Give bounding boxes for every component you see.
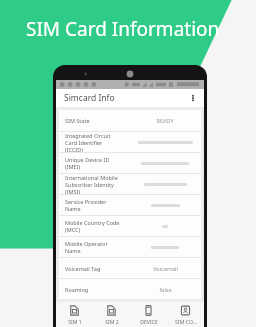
staticText: Mobile Country Code (MCC)	[65, 219, 135, 233]
button[interactable]: Integrated Circuit Card Identifier (ICCI…	[65, 132, 195, 152]
button[interactable]: Voicemail Tag	[65, 258, 195, 278]
staticText: SIM State	[65, 117, 135, 124]
button[interactable]: Mobile Operator Name	[65, 237, 195, 257]
staticText: Unique Device ID (IMEI)	[65, 156, 135, 170]
button[interactable]: International Mobile Subscriber Identity…	[65, 174, 195, 194]
button[interactable]: Roaming	[65, 279, 195, 299]
button[interactable]: Service Provider Name	[65, 195, 195, 215]
button[interactable]: DEVICE	[130, 302, 167, 327]
staticText: SIM 1	[68, 318, 82, 325]
staticText: DEVICE	[140, 318, 158, 325]
button[interactable]: Unique Device ID (IMEI)	[65, 153, 195, 173]
staticText: Roaming	[65, 286, 135, 293]
button[interactable]: More options	[187, 92, 199, 104]
staticText: SIM Card Information	[26, 16, 220, 42]
button[interactable]: Simcard Info	[56, 89, 204, 107]
button[interactable]: SIM CO...	[167, 302, 204, 327]
staticText: SIM CO...	[175, 318, 197, 325]
staticText: false	[159, 286, 172, 293]
button[interactable]: SIM 1	[56, 302, 93, 327]
staticText: Mobile Operator Name	[65, 240, 135, 254]
staticText: Integrated Circuit Card Identifier (ICCI…	[65, 132, 135, 152]
staticText: SIM 2	[105, 318, 119, 325]
staticText: Simcard Info	[64, 92, 115, 104]
button[interactable]: SIM State	[65, 110, 195, 131]
button[interactable]: SIM 2	[93, 302, 130, 327]
staticText: International Mobile Subscriber Identity…	[65, 174, 135, 194]
staticText: Voicemail Tag	[65, 265, 135, 272]
staticText: Service Provider Name	[65, 198, 135, 212]
staticText: READY	[156, 117, 174, 124]
button[interactable]: Mobile Country Code (MCC)	[65, 216, 195, 236]
staticText: Voicemail	[153, 265, 178, 272]
